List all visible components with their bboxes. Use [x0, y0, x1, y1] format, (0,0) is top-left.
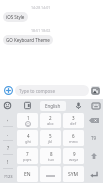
button[interactable]: 2 — [40, 113, 61, 128]
staticText: 7 — [26, 151, 29, 157]
button[interactable]: Voice input — [73, 100, 84, 111]
staticText: tuv — [48, 157, 54, 162]
staticText: 1 — [27, 115, 30, 121]
staticText: , — [7, 116, 9, 123]
staticText: ?123 — [4, 174, 13, 179]
button[interactable]: Space — [40, 166, 61, 182]
button[interactable]: , — [0, 112, 16, 127]
staticText: 8 — [50, 151, 53, 157]
button[interactable]: Backspace — [86, 113, 102, 128]
staticText: . — [7, 131, 9, 138]
button[interactable]: Emoji — [2, 100, 13, 111]
staticText: mno — [69, 139, 78, 144]
button[interactable]: English — [40, 101, 66, 111]
button[interactable]: 9 — [63, 148, 84, 164]
button[interactable]: Add attachment — [2, 84, 15, 97]
staticText: jkl — [48, 139, 53, 144]
button[interactable]: 7 — [17, 148, 38, 164]
button[interactable]: 6 — [63, 130, 84, 146]
button[interactable]: 1 — [17, 113, 38, 128]
other: Space — [40, 166, 61, 182]
button[interactable]: ? — [0, 141, 16, 155]
staticText: 2 — [49, 115, 52, 121]
staticText: pqrs — [23, 157, 32, 162]
button[interactable]: Keyboard settings — [90, 100, 101, 111]
staticText: 6 — [72, 133, 75, 139]
staticText: ! — [7, 159, 9, 166]
button[interactable]: ! — [0, 155, 16, 169]
staticText: SYM — [68, 171, 79, 178]
button[interactable]: GO Keyboard Theme — [3, 35, 53, 45]
staticText: 14:28 14:01 — [31, 5, 51, 10]
button[interactable]: 4 — [17, 130, 38, 146]
button[interactable]: Enter — [86, 166, 102, 182]
staticText: def — [70, 121, 77, 126]
staticText: ? — [7, 145, 10, 152]
button[interactable]: 3 — [63, 113, 84, 128]
button[interactable]: iOS Style — [3, 12, 28, 22]
staticText: 3 — [72, 115, 75, 121]
staticText: 5 — [49, 133, 52, 139]
button[interactable]: Send image — [91, 86, 100, 95]
button[interactable]: Clipboard — [22, 100, 33, 111]
staticText: ghi — [25, 139, 31, 144]
button[interactable]: 5 — [40, 130, 61, 146]
button[interactable]: ?123 — [0, 169, 16, 183]
staticText: iOS Style — [6, 14, 25, 20]
staticText: GO Keyboard Theme — [6, 37, 50, 43]
button[interactable]: Shift — [86, 148, 102, 164]
staticText: Type to compose — [19, 88, 55, 94]
button[interactable]: EN — [17, 166, 38, 182]
staticText: 9 — [73, 151, 76, 157]
button[interactable]: 8 — [40, 148, 61, 164]
button[interactable]: SYM — [63, 166, 84, 182]
staticText: EN — [24, 171, 31, 178]
staticText: 4 — [27, 133, 30, 139]
staticText: 18:51 18:02 — [31, 28, 51, 33]
button[interactable]: . — [0, 127, 16, 141]
staticText: abc — [47, 121, 54, 126]
staticText: wxyz — [69, 157, 79, 162]
button[interactable]: Type to compose — [15, 85, 89, 96]
staticText: English — [45, 103, 61, 109]
staticText: T9 — [91, 135, 97, 141]
button[interactable]: T9 mode — [86, 130, 102, 146]
